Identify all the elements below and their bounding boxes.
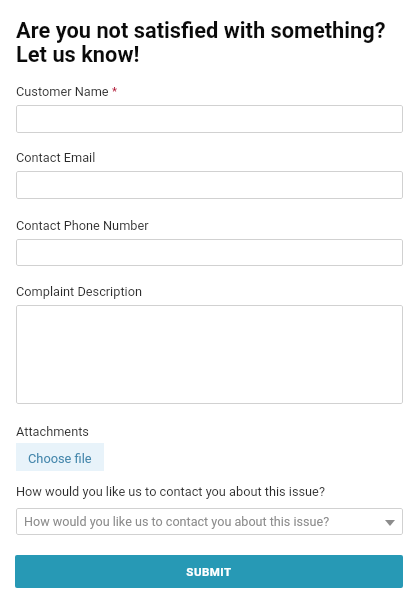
- button[interactable]: Contact Phone Number input: [16, 239, 403, 266]
- staticText: Attachments: [16, 424, 89, 439]
- staticText: Are you not satisfied with something? Le…: [16, 18, 386, 68]
- button[interactable]: Choose file: [16, 443, 104, 471]
- staticText: SUBMIT: [186, 565, 232, 578]
- button[interactable]: Customer Name input: [16, 105, 403, 133]
- staticText: Customer Name: [16, 84, 109, 99]
- staticText: How would you like us to contact you abo…: [24, 514, 330, 529]
- other: Open dropdown: [385, 520, 395, 526]
- staticText: Choose file: [28, 451, 92, 466]
- staticText: *: [112, 85, 117, 98]
- button[interactable]: Complaint Description input: [16, 305, 403, 404]
- staticText: Contact Phone Number: [16, 218, 149, 233]
- button[interactable]: SUBMIT: [15, 555, 403, 588]
- staticText: Contact Email: [16, 150, 96, 165]
- staticText: How would you like us to contact you abo…: [16, 484, 325, 499]
- button[interactable]: Contact Email input: [16, 171, 403, 199]
- staticText: Complaint Description: [16, 284, 142, 299]
- button[interactable]: How would you like us to contact you abo…: [16, 508, 403, 535]
